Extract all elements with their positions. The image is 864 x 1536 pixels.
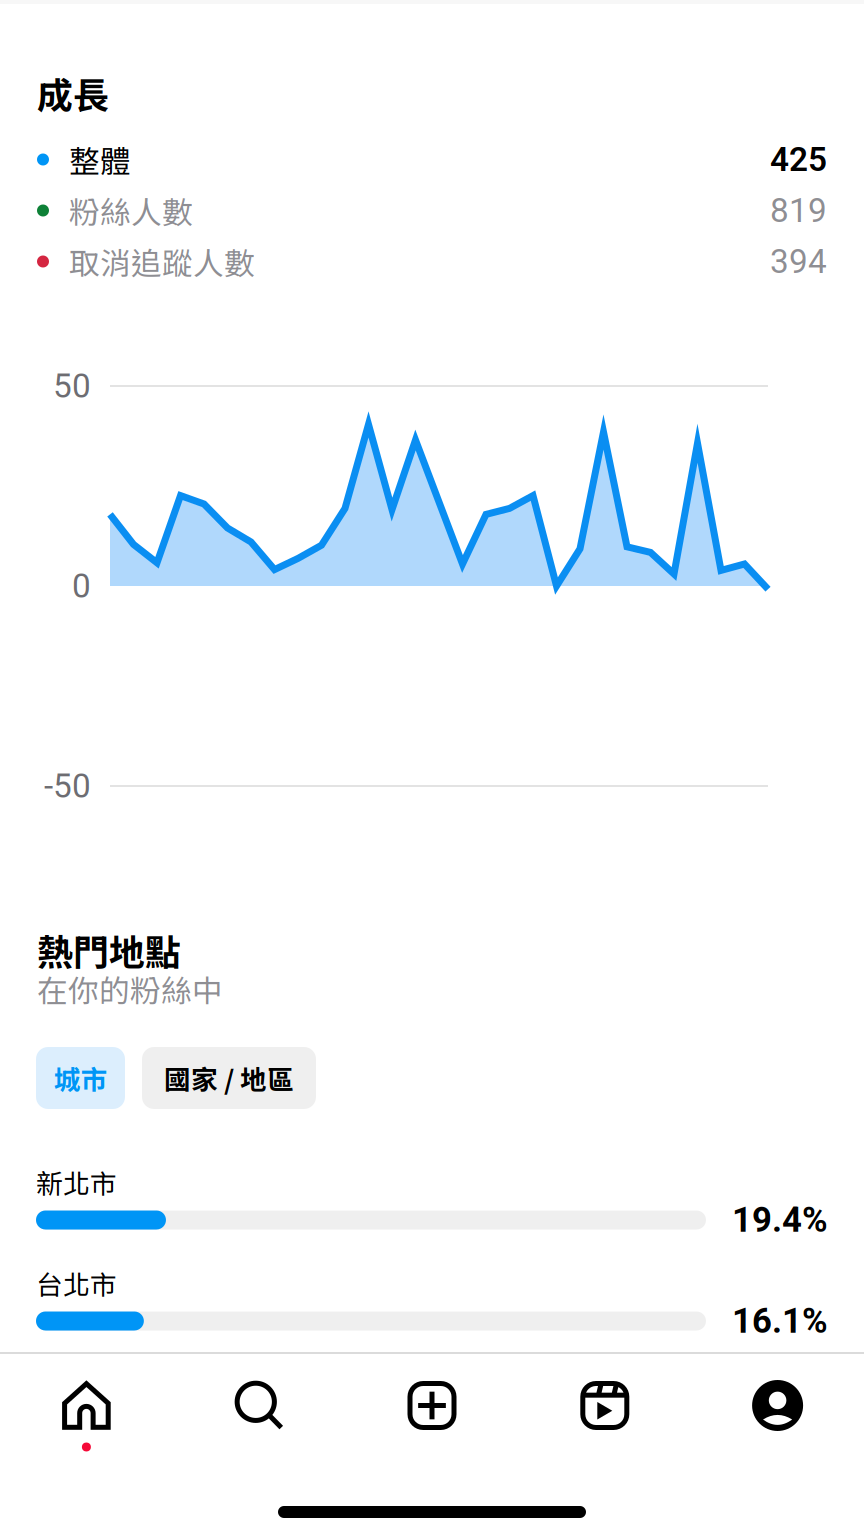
button[interactable]: Create xyxy=(346,1354,518,1456)
staticText: 整體 xyxy=(69,137,131,182)
button[interactable]: 國家 / 地區 xyxy=(142,1047,316,1109)
staticText: -50 xyxy=(44,766,91,806)
button[interactable]: Search xyxy=(173,1354,346,1456)
staticText: 19.4% xyxy=(732,1200,828,1240)
staticText: 16.1% xyxy=(732,1301,828,1341)
staticText: 425 xyxy=(770,140,827,179)
staticText: 0 xyxy=(72,566,91,606)
button[interactable]: Reels xyxy=(518,1354,691,1456)
staticText: 台北市 xyxy=(36,1264,117,1302)
button[interactable]: 城市 xyxy=(36,1047,125,1109)
button[interactable]: Home xyxy=(0,1354,173,1456)
staticText: 城市 xyxy=(53,1059,107,1097)
staticText: 成長 xyxy=(37,67,109,119)
staticText: 取消追蹤人數 xyxy=(69,239,255,284)
staticText: 國家 / 地區 xyxy=(164,1059,294,1097)
staticText: 新北市 xyxy=(36,1163,117,1201)
staticText: 在你的粉絲中 xyxy=(37,967,223,1011)
button[interactable]: Profile xyxy=(691,1354,864,1456)
staticText: 50 xyxy=(53,366,91,406)
staticText: 819 xyxy=(770,191,827,230)
staticText: 394 xyxy=(770,242,827,281)
staticText: 熱門地點 xyxy=(37,924,181,976)
staticText: 粉絲人數 xyxy=(69,188,193,233)
